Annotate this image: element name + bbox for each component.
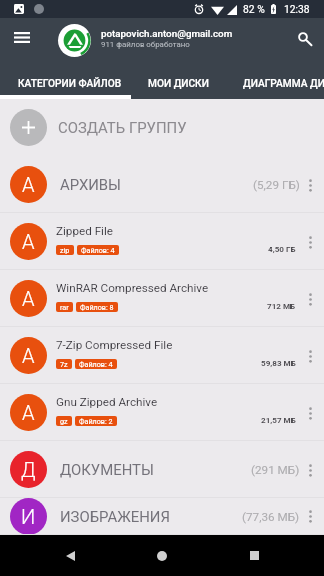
staticText: Файлов: 4: [81, 246, 115, 254]
staticText: 4,50 ГБ: [268, 244, 296, 253]
staticText: 59,83 МБ: [261, 358, 296, 367]
button[interactable]: Back: [48, 535, 92, 576]
staticText: zip: [60, 246, 70, 254]
button[interactable]: Home: [140, 535, 184, 576]
staticText: rar: [60, 303, 69, 311]
button[interactable]: Search: [284, 18, 324, 62]
staticText: ДОКУМЕНТЫ: [60, 461, 154, 478]
staticText: А: [22, 173, 35, 196]
staticText: СОЗДАТЬ ГРУППУ: [58, 119, 187, 136]
staticText: АРХИВЫ: [60, 176, 121, 193]
staticText: 82 %: [243, 3, 265, 15]
button[interactable]: А: [0, 213, 324, 270]
staticText: 21,57 МБ: [261, 415, 296, 424]
button[interactable]: More options: [300, 277, 324, 321]
staticText: А: [22, 287, 35, 310]
staticText: Gnu Zipped Archive: [56, 395, 158, 409]
button[interactable]: А: [0, 384, 324, 441]
staticText: А: [22, 344, 35, 367]
staticText: potapovich.anton@gmail.com: [101, 28, 233, 39]
staticText: Д: [21, 458, 36, 481]
staticText: (5,29 ГБ): [253, 178, 300, 192]
staticText: gz: [60, 417, 68, 425]
staticText: 12:38: [284, 3, 310, 15]
staticText: Файлов: 4: [79, 360, 113, 368]
button[interactable]: More options: [300, 448, 324, 492]
staticText: КАТЕГОРИИ ФАЙЛОВ: [18, 78, 122, 90]
button[interactable]: ДИАГРАММА ДИСКА: [226, 70, 324, 97]
staticText: WinRAR Compressed Archive: [56, 281, 209, 295]
staticText: МОИ ДИСКИ: [148, 78, 209, 90]
button[interactable]: Menu: [0, 18, 44, 62]
button[interactable]: А: [0, 156, 324, 213]
button[interactable]: Д: [0, 441, 324, 498]
staticText: Файлов: 8: [80, 303, 114, 311]
staticText: (291 МБ): [251, 463, 300, 477]
button[interactable]: А: [0, 327, 324, 384]
staticText: Zipped File: [56, 224, 113, 238]
button[interactable]: КАТЕГОРИИ ФАЙЛОВ: [4, 70, 135, 97]
staticText: ДИАГРАММА ДИСКА: [243, 78, 324, 90]
button[interactable]: И: [0, 498, 324, 535]
staticText: А: [22, 230, 35, 253]
button[interactable]: МОИ ДИСКИ: [131, 70, 226, 97]
button[interactable]: More options: [300, 220, 324, 264]
button[interactable]: СОЗДАТЬ ГРУППУ: [0, 99, 324, 156]
button[interactable]: More options: [300, 334, 324, 378]
staticText: 7z: [60, 360, 68, 368]
staticText: ИЗОБРАЖЕНИЯ: [60, 508, 170, 525]
staticText: 7-Zip Compressed File: [56, 338, 173, 352]
button[interactable]: More options: [300, 163, 324, 207]
button[interactable]: More options: [300, 498, 324, 535]
button[interactable]: А: [0, 270, 324, 327]
staticText: Файлов: 2: [79, 417, 113, 425]
staticText: 911 файлов обработано: [101, 40, 190, 49]
button[interactable]: More options: [300, 391, 324, 435]
staticText: А: [22, 401, 35, 424]
staticText: (77,36 МБ): [242, 510, 300, 524]
staticText: И: [21, 505, 36, 528]
staticText: 712 МБ: [267, 301, 296, 310]
button[interactable]: Recents: [232, 535, 276, 576]
